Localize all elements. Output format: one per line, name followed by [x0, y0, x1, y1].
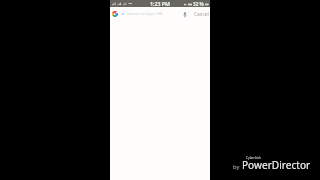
button[interactable]: Search or type URL [120, 7, 177, 20]
staticText: PowerDirector [242, 158, 311, 172]
staticText: CyberLink [246, 156, 261, 160]
staticText: 32 % [193, 1, 204, 7]
staticText: 1:23 PM [150, 0, 170, 7]
button[interactable]: Voice search [179, 8, 191, 20]
button[interactable]: Google [111, 10, 119, 18]
staticText: Cancel [194, 11, 209, 17]
staticText: Search or type URL [127, 11, 164, 17]
button[interactable]: Cancel [192, 7, 211, 20]
staticText: by [233, 163, 240, 171]
